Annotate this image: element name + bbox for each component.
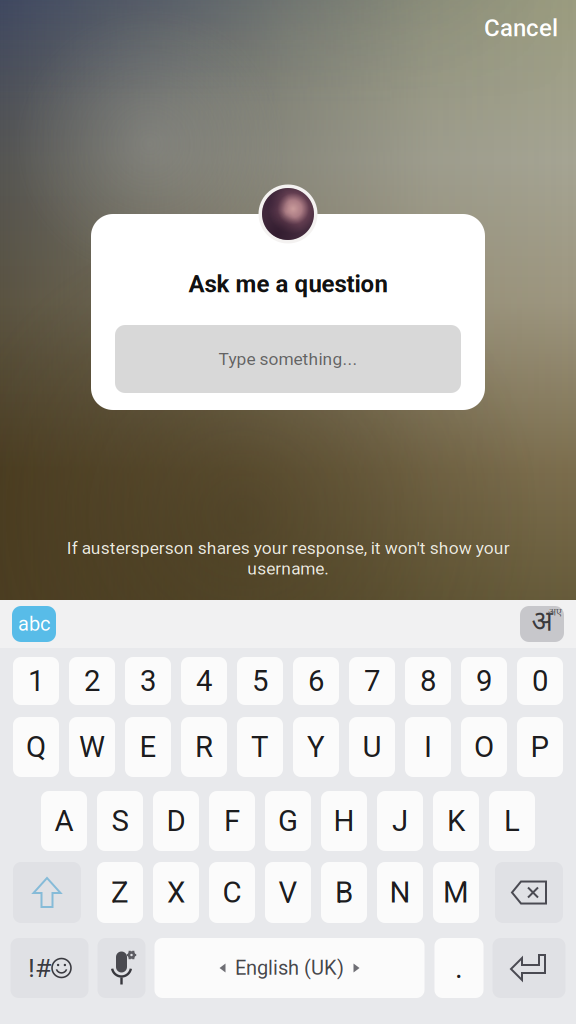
- button[interactable]: V: [265, 862, 311, 923]
- button[interactable]: B: [321, 862, 367, 923]
- button[interactable]: 0: [517, 657, 563, 705]
- staticText: L: [504, 804, 520, 838]
- button[interactable]: .: [434, 938, 483, 998]
- button[interactable]: T: [237, 717, 283, 777]
- button[interactable]: 8: [405, 657, 451, 705]
- staticText: 2: [84, 664, 100, 698]
- button[interactable]: O: [461, 717, 507, 777]
- staticText: J: [392, 804, 408, 838]
- button[interactable]: English (UK): [154, 938, 424, 998]
- staticText: 0: [532, 664, 548, 698]
- button[interactable]: Return: [492, 938, 565, 998]
- button[interactable]: I: [405, 717, 451, 777]
- button[interactable]: Shift: [13, 862, 81, 923]
- staticText: N: [389, 875, 410, 910]
- button[interactable]: N: [377, 862, 423, 923]
- staticText: I: [424, 730, 432, 764]
- staticText: abc: [18, 612, 50, 636]
- staticText: Z: [111, 875, 129, 910]
- button[interactable]: W: [69, 717, 115, 777]
- staticText: K: [447, 804, 465, 838]
- staticText: Ask me a question: [188, 270, 387, 298]
- button[interactable]: 7: [349, 657, 395, 705]
- staticText: .: [455, 951, 463, 985]
- button[interactable]: 9: [461, 657, 507, 705]
- staticText: U: [362, 730, 381, 764]
- button[interactable]: Voice input: [97, 938, 145, 998]
- staticText: 5: [252, 664, 268, 698]
- staticText: 3: [140, 664, 156, 698]
- staticText: G: [278, 804, 298, 838]
- staticText: V: [278, 875, 297, 910]
- staticText: T: [251, 730, 269, 764]
- staticText: A: [54, 804, 73, 838]
- button[interactable]: E: [125, 717, 171, 777]
- staticText: B: [335, 875, 353, 910]
- button[interactable]: P: [517, 717, 563, 777]
- staticText: अए: [548, 606, 562, 620]
- staticText: X: [167, 875, 185, 910]
- button[interactable]: M: [433, 862, 479, 923]
- staticText: If austersperson shares your response, i…: [66, 538, 509, 579]
- button[interactable]: D: [153, 791, 199, 851]
- button[interactable]: K: [433, 791, 479, 851]
- button[interactable]: F: [209, 791, 255, 851]
- button[interactable]: 2: [69, 657, 115, 705]
- button[interactable]: J: [377, 791, 423, 851]
- staticText: S: [111, 804, 128, 838]
- staticText: 6: [308, 664, 324, 698]
- button[interactable]: Q: [13, 717, 59, 777]
- button[interactable]: H: [321, 791, 367, 851]
- button[interactable]: Switch language: [520, 606, 564, 642]
- staticText: Y: [307, 730, 325, 764]
- button[interactable]: 4: [181, 657, 227, 705]
- button[interactable]: Cancel: [484, 0, 576, 56]
- button[interactable]: Delete: [495, 862, 563, 923]
- staticText: 4: [196, 664, 212, 698]
- staticText: D: [166, 804, 185, 838]
- button[interactable]: L: [489, 791, 535, 851]
- staticText: 7: [364, 664, 380, 698]
- button[interactable]: Symbols and emoji: [10, 938, 88, 998]
- staticText: R: [195, 730, 213, 764]
- staticText: F: [224, 804, 240, 838]
- button[interactable]: G: [265, 791, 311, 851]
- staticText: Type something...: [218, 349, 357, 369]
- staticText: M: [443, 875, 469, 910]
- button[interactable]: R: [181, 717, 227, 777]
- button[interactable]: 3: [125, 657, 171, 705]
- staticText: O: [474, 730, 494, 764]
- staticText: !#: [28, 952, 51, 984]
- button[interactable]: U: [349, 717, 395, 777]
- staticText: W: [79, 730, 105, 764]
- staticText: अ: [531, 606, 552, 642]
- button[interactable]: Y: [293, 717, 339, 777]
- staticText: 1: [28, 664, 44, 698]
- button[interactable]: Type something...: [115, 325, 461, 393]
- staticText: E: [139, 730, 156, 764]
- button[interactable]: A: [41, 791, 87, 851]
- staticText: P: [530, 730, 549, 764]
- staticText: H: [333, 804, 354, 838]
- button[interactable]: 6: [293, 657, 339, 705]
- staticText: Q: [26, 730, 46, 764]
- button[interactable]: S: [97, 791, 143, 851]
- button[interactable]: X: [153, 862, 199, 923]
- button[interactable]: 1: [13, 657, 59, 705]
- staticText: English (UK): [235, 956, 344, 980]
- staticText: Cancel: [484, 14, 558, 42]
- button[interactable]: abc: [12, 606, 56, 642]
- staticText: C: [222, 875, 241, 910]
- staticText: 9: [476, 664, 492, 698]
- button[interactable]: C: [209, 862, 255, 923]
- button[interactable]: 5: [237, 657, 283, 705]
- staticText: 8: [420, 664, 436, 698]
- button[interactable]: Z: [97, 862, 143, 923]
